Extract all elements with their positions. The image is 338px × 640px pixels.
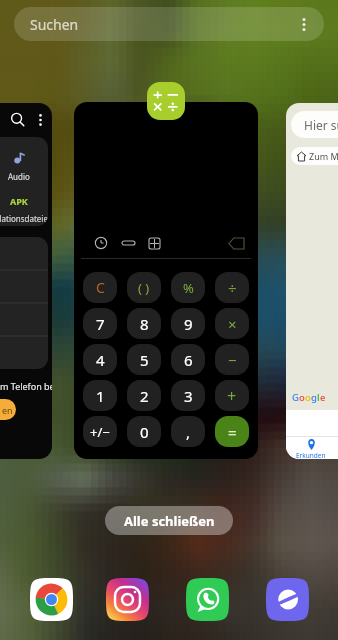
staticText: Audio xyxy=(8,171,30,182)
staticText: tallationsdateien xyxy=(0,213,48,224)
staticText: Alle schließen xyxy=(124,512,215,530)
staticText: − xyxy=(228,350,237,370)
staticText: 5 xyxy=(140,350,149,370)
staticText: % xyxy=(183,279,194,297)
button[interactable]: en xyxy=(0,399,16,420)
button[interactable]: Instagram xyxy=(106,578,149,621)
staticText: , xyxy=(186,422,191,442)
staticText: G xyxy=(292,391,299,404)
button[interactable]: 4 xyxy=(83,344,117,375)
button[interactable]: % xyxy=(171,272,205,303)
staticText: Erkunden xyxy=(296,451,326,459)
staticText: Zum Mitne xyxy=(309,150,338,162)
staticText: ( ) xyxy=(138,279,150,297)
staticText: 8 xyxy=(140,314,149,334)
staticText: 2 xyxy=(140,386,149,406)
button[interactable]: 5 xyxy=(127,344,161,375)
staticText: 7 xyxy=(96,314,105,334)
button[interactable]: More options xyxy=(293,13,315,35)
button[interactable]: ÷ xyxy=(215,272,249,303)
staticText: 0 xyxy=(140,422,149,442)
button[interactable]: , xyxy=(171,416,205,447)
staticText: l xyxy=(317,391,320,404)
button[interactable]: 0 xyxy=(127,416,161,447)
staticText: Suchen xyxy=(30,15,79,34)
button[interactable]: = xyxy=(215,416,249,447)
staticText: g xyxy=(311,391,317,404)
staticText: Hier suchen xyxy=(304,117,338,133)
button[interactable]: 2 xyxy=(127,380,161,411)
button[interactable]: − xyxy=(215,344,249,375)
button[interactable]: +/− xyxy=(83,416,117,447)
staticText: 9 xyxy=(184,314,193,334)
button[interactable]: 7 xyxy=(83,308,117,339)
button[interactable]: Hier suchen xyxy=(286,103,338,459)
button[interactable]: 6 xyxy=(171,344,205,375)
staticText: × xyxy=(228,314,237,334)
staticText: C xyxy=(96,278,105,297)
button[interactable]: WhatsApp xyxy=(186,578,229,621)
button[interactable]: ( ) xyxy=(127,272,161,303)
button[interactable]: Suchen xyxy=(14,7,324,41)
staticText: 4 xyxy=(96,350,105,370)
button[interactable]: C xyxy=(83,272,117,303)
button[interactable]: Samsung Internet xyxy=(266,578,309,621)
button[interactable]: × xyxy=(215,308,249,339)
button[interactable]: Alle schließen xyxy=(105,506,233,535)
staticText: e xyxy=(320,391,326,404)
button[interactable]: 9 xyxy=(171,308,205,339)
button[interactable]: 1 xyxy=(83,380,117,411)
staticText: + xyxy=(227,385,237,407)
staticText: 6 xyxy=(184,350,193,370)
button[interactable]: Audio xyxy=(0,103,52,459)
button[interactable]: Rechner xyxy=(147,82,185,120)
staticText: m Telefon belegt. xyxy=(0,380,52,392)
button[interactable]: C xyxy=(74,102,258,459)
staticText: +/− xyxy=(90,423,110,441)
button[interactable]: + xyxy=(215,380,249,411)
staticText: o xyxy=(305,391,311,404)
staticText: = xyxy=(228,422,237,442)
staticText: APK xyxy=(10,195,28,207)
staticText: en xyxy=(2,404,13,416)
staticText: 3 xyxy=(184,386,193,406)
button[interactable]: 3 xyxy=(171,380,205,411)
staticText: 1 xyxy=(96,386,105,406)
staticText: o xyxy=(299,391,305,404)
staticText: ÷ xyxy=(228,278,237,298)
button[interactable]: 8 xyxy=(127,308,161,339)
button[interactable]: Chrome xyxy=(30,578,73,621)
